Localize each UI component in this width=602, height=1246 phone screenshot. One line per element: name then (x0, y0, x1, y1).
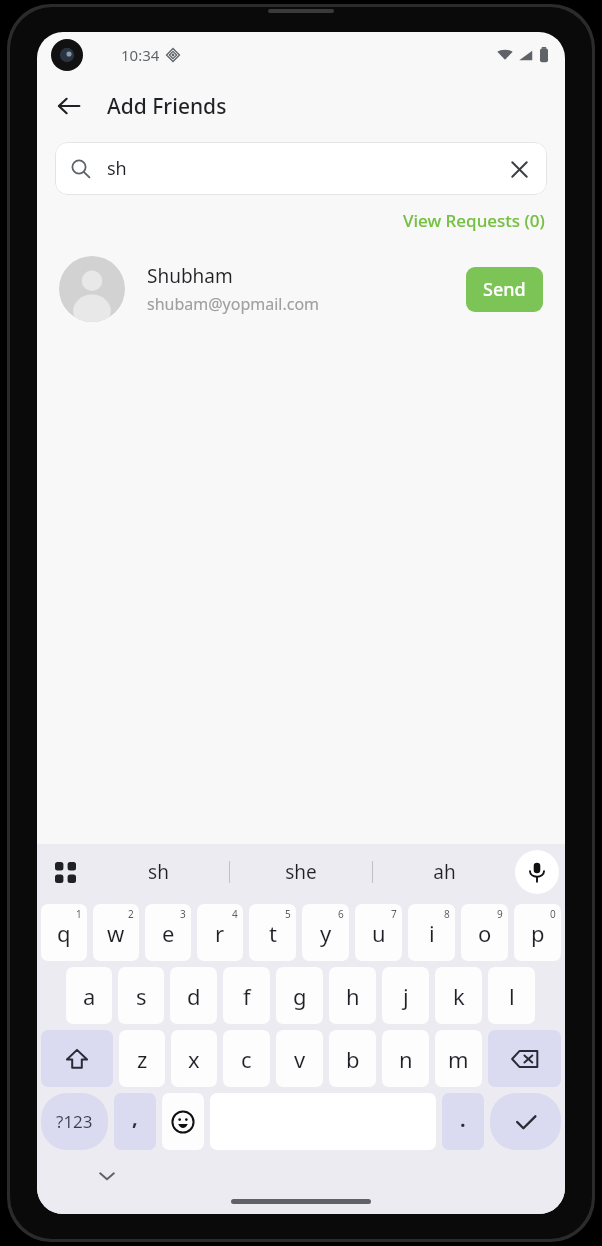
staticText: 0 (550, 907, 556, 921)
staticText: g (293, 981, 307, 1011)
staticText: h (346, 981, 360, 1011)
button[interactable]: g (276, 967, 323, 1024)
button[interactable]: z (119, 1030, 165, 1087)
staticText: 7 (391, 907, 397, 921)
staticText: sh (107, 156, 127, 181)
staticText: 10:34 (121, 45, 160, 65)
staticText: 6 (338, 907, 344, 921)
button[interactable]: Clear search (497, 147, 541, 191)
staticText: 1 (76, 907, 82, 921)
staticText: sh (148, 859, 169, 885)
staticText: a (83, 981, 96, 1011)
button[interactable]: she (230, 844, 372, 900)
button[interactable]: f (223, 967, 270, 1024)
button[interactable]: Keyboard options (43, 850, 87, 894)
staticText: e (162, 918, 175, 948)
button[interactable]: l (488, 967, 535, 1024)
button[interactable]: Back (45, 82, 93, 130)
button[interactable]: q (41, 904, 87, 961)
button[interactable]: v (276, 1030, 323, 1087)
button[interactable]: d (170, 967, 217, 1024)
staticText: c (241, 1044, 252, 1074)
staticText: p (531, 918, 545, 948)
button[interactable]: ?123 (41, 1093, 108, 1150)
staticText: Add Friends (107, 92, 227, 121)
staticText: 9 (497, 907, 503, 921)
staticText: 8 (444, 907, 450, 921)
staticText: 2 (128, 907, 134, 921)
staticText: q (57, 918, 71, 948)
button[interactable]: sh (87, 844, 229, 900)
staticText: shubam@yopmail.com (147, 293, 320, 315)
staticText: n (399, 1044, 413, 1074)
button[interactable]: n (382, 1030, 429, 1087)
button[interactable]: Period (442, 1093, 484, 1150)
staticText: t (269, 918, 277, 948)
staticText: z (137, 1044, 148, 1074)
button[interactable]: t (249, 904, 296, 961)
staticText: y (320, 918, 332, 948)
button[interactable]: r (197, 904, 243, 961)
staticText: Send (483, 277, 526, 302)
button[interactable]: a (66, 967, 112, 1024)
button[interactable]: x (171, 1030, 217, 1087)
staticText: l (509, 981, 515, 1011)
button[interactable]: c (223, 1030, 270, 1087)
button[interactable]: ah (373, 844, 515, 900)
staticText: ?123 (56, 1110, 93, 1133)
staticText: View Requests (0) (403, 209, 545, 232)
button[interactable]: s (118, 967, 164, 1024)
staticText: u (372, 918, 386, 948)
staticText: d (187, 981, 201, 1011)
staticText: ah (433, 859, 456, 885)
staticText: j (403, 981, 409, 1011)
button[interactable]: e (145, 904, 191, 961)
button[interactable]: h (329, 967, 376, 1024)
staticText: v (294, 1044, 306, 1074)
staticText: k (453, 981, 465, 1011)
button[interactable]: p (514, 904, 561, 961)
staticText: , (132, 1104, 138, 1131)
button[interactable]: View Requests (0) (397, 205, 551, 236)
staticText: Shubham (147, 263, 233, 289)
button[interactable]: k (435, 967, 482, 1024)
staticText: f (243, 981, 251, 1011)
button[interactable]: Send (466, 267, 543, 312)
button[interactable]: Backspace (488, 1030, 561, 1087)
button[interactable]: Comma (114, 1093, 156, 1150)
button[interactable]: w (93, 904, 139, 961)
button[interactable]: Hide keyboard (89, 1158, 125, 1194)
staticText: o (478, 918, 492, 948)
staticText: i (429, 918, 435, 948)
button[interactable]: m (435, 1030, 482, 1087)
staticText: w (107, 918, 125, 948)
staticText: x (188, 1044, 200, 1074)
staticText: 4 (232, 907, 238, 921)
staticText: she (285, 859, 317, 885)
staticText: . (460, 1106, 466, 1133)
button[interactable]: y (302, 904, 349, 961)
button[interactable]: i (408, 904, 455, 961)
staticText: b (346, 1044, 360, 1074)
button[interactable]: u (355, 904, 402, 961)
button[interactable]: Done (490, 1093, 561, 1150)
button[interactable]: j (382, 967, 429, 1024)
button[interactable]: sh (55, 142, 547, 195)
button[interactable]: Shubham (37, 248, 565, 330)
staticText: 5 (285, 907, 291, 921)
button[interactable]: Shift (41, 1030, 113, 1087)
staticText: m (448, 1044, 469, 1074)
button[interactable]: b (329, 1030, 376, 1087)
button[interactable]: o (461, 904, 508, 961)
staticText: r (215, 918, 225, 948)
button[interactable]: Voice input (515, 850, 559, 894)
staticText: s (136, 981, 147, 1011)
button[interactable]: Emoji (162, 1093, 204, 1150)
staticText: 3 (180, 907, 186, 921)
